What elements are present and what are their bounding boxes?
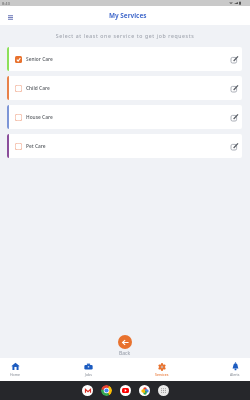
staticText: Senior Care [26, 56, 53, 63]
button[interactable]: Child Care [7, 76, 242, 100]
button[interactable]: Senior Care [7, 47, 242, 71]
button[interactable]: Jobs [73, 358, 103, 381]
button[interactable]: Home [0, 358, 30, 381]
staticText: Back [119, 350, 131, 357]
button[interactable]: Gmail [82, 385, 93, 396]
button[interactable]: Back [118, 335, 132, 357]
staticText: Pet Care [26, 143, 46, 150]
staticText: Child Care [26, 85, 50, 92]
button[interactable]: Chrome [101, 385, 112, 396]
button[interactable]: Pet Care [7, 134, 242, 158]
button[interactable]: Alerts [220, 358, 250, 381]
button[interactable]: Services [147, 358, 177, 381]
button[interactable]: Photos [139, 385, 150, 396]
staticText: Jobs [85, 372, 92, 377]
button[interactable]: YouTube [120, 385, 131, 396]
button[interactable]: Edit Pet Care [227, 139, 241, 153]
button[interactable]: Menu [4, 10, 16, 22]
staticText: Select at least one service to get job r… [0, 32, 250, 39]
staticText: House Care [26, 114, 53, 121]
staticText: Services [155, 372, 169, 377]
staticText: Alerts [230, 372, 240, 377]
button[interactable]: All apps [158, 385, 169, 396]
staticText: 8:40 [2, 1, 10, 6]
staticText: My Services [109, 11, 147, 20]
button[interactable]: Edit Child Care [227, 81, 241, 95]
staticText: Home [10, 372, 20, 377]
button[interactable]: Edit Senior Care [227, 52, 241, 66]
button[interactable]: Edit House Care [227, 110, 241, 124]
button[interactable]: House Care [7, 105, 242, 129]
